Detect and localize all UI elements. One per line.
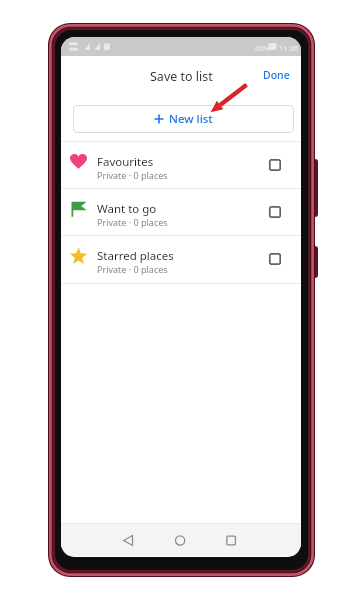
- button[interactable]: [269, 159, 281, 171]
- staticText: Want to go: [97, 201, 157, 217]
- staticText: 60%: [255, 43, 270, 53]
- staticText: Starred places: [97, 248, 174, 264]
- staticText: Private · 0 places: [97, 263, 168, 275]
- staticText: 11:36: [279, 43, 299, 53]
- button[interactable]: Starred places: [61, 235, 301, 282]
- staticText: Favourites: [97, 154, 154, 170]
- button[interactable]: New list: [73, 105, 294, 133]
- staticText: Save to list: [150, 68, 213, 85]
- button[interactable]: [269, 253, 281, 265]
- button[interactable]: [168, 528, 192, 552]
- button[interactable]: Done: [263, 68, 290, 82]
- staticText: Done: [263, 68, 290, 82]
- staticText: New list: [169, 111, 213, 127]
- button[interactable]: [219, 528, 243, 552]
- staticText: Private · 0 places: [97, 169, 168, 181]
- button[interactable]: [269, 206, 281, 218]
- button[interactable]: Want to go: [61, 188, 301, 235]
- button[interactable]: [116, 528, 140, 552]
- button[interactable]: Favourites: [61, 141, 301, 188]
- staticText: Private · 0 places: [97, 216, 168, 228]
